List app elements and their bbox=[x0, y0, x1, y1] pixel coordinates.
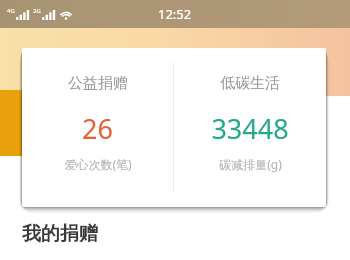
button[interactable]: 公益捐赠 bbox=[22, 48, 173, 207]
button[interactable]: 低碳生活 bbox=[174, 48, 326, 207]
staticText: 我的捐赠 bbox=[22, 222, 98, 246]
staticText: 26 bbox=[82, 110, 113, 147]
staticText: 33448 bbox=[211, 110, 289, 147]
staticText: 低碳生活 bbox=[220, 74, 280, 93]
staticText: 12:52 bbox=[158, 5, 192, 23]
staticText: 4G bbox=[7, 7, 15, 15]
other: 2G signal strength bbox=[33, 10, 53, 20]
other: 4G signal strength bbox=[7, 10, 27, 20]
staticText: 碳减排量(g) bbox=[219, 156, 282, 172]
other: Wi-Fi signal bbox=[59, 9, 73, 20]
staticText: 爱心次数(笔) bbox=[64, 156, 132, 172]
staticText: 公益捐赠 bbox=[68, 74, 128, 93]
staticText: 2G bbox=[33, 7, 41, 15]
